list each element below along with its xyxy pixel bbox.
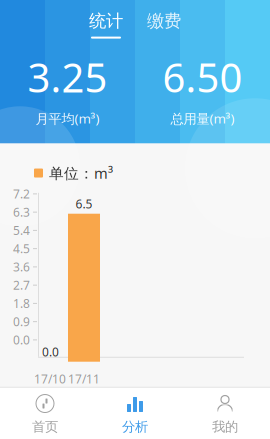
button[interactable]: 统计: [77, 0, 135, 39]
button[interactable]: 我的: [180, 388, 270, 439]
staticText: 单位：m³: [49, 163, 113, 183]
staticText: 2.7: [13, 277, 30, 293]
staticText: 3.25: [27, 50, 107, 104]
staticText: 总用量(m³): [170, 110, 234, 127]
staticText: 17/10: [34, 371, 66, 387]
staticText: 我的: [212, 418, 238, 435]
button[interactable]: 首页: [0, 388, 90, 439]
staticText: 7.2: [13, 186, 30, 202]
staticText: 5.4: [13, 222, 30, 238]
staticText: 3.6: [13, 259, 30, 275]
staticText: 17/11: [68, 371, 100, 387]
staticText: 6.3: [13, 204, 30, 220]
staticText: 缴费: [147, 10, 181, 32]
staticText: 0.0: [13, 332, 30, 348]
staticText: 分析: [122, 418, 148, 435]
button[interactable]: 分析: [90, 388, 180, 439]
staticText: 0.9: [13, 314, 30, 330]
button[interactable]: 缴费: [135, 0, 193, 39]
staticText: 4.5: [13, 241, 30, 257]
staticText: 6.5: [75, 196, 92, 212]
staticText: 0.0: [42, 344, 59, 360]
staticText: 6.50: [162, 50, 242, 104]
staticText: 首页: [32, 418, 58, 435]
staticText: 月平均(m³): [35, 110, 99, 127]
staticText: 统计: [89, 10, 123, 32]
staticText: 1.8: [13, 295, 30, 311]
